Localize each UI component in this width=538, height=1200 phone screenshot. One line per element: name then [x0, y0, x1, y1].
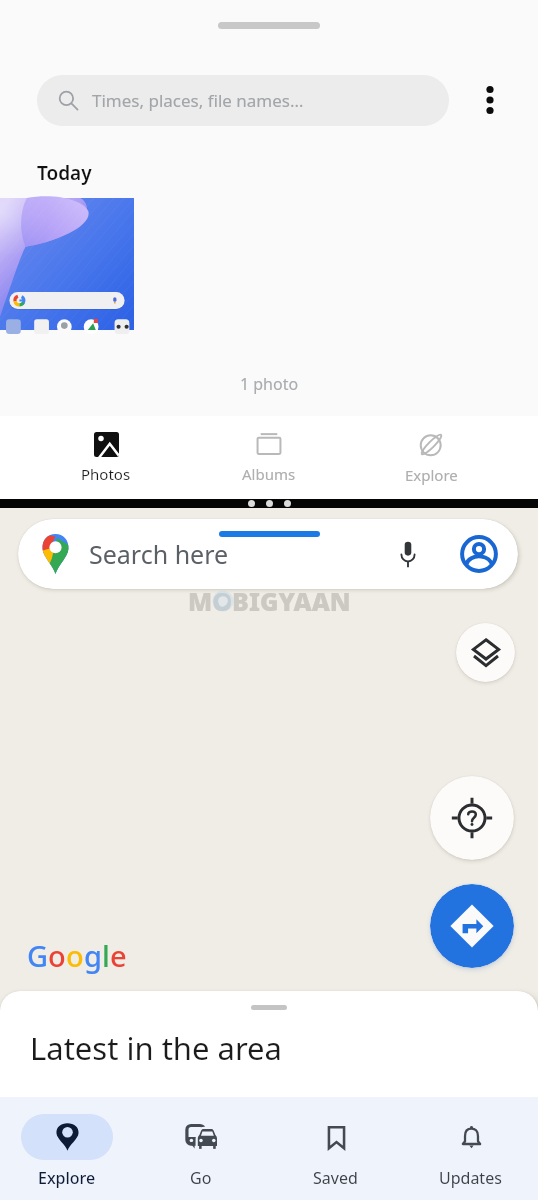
staticText: MOBIGYAAN	[188, 584, 351, 618]
button[interactable]: My location	[430, 776, 514, 860]
button[interactable]: Explore	[350, 416, 513, 499]
staticText: 1 photo	[0, 373, 538, 395]
staticText: e	[110, 936, 127, 975]
staticText: Today	[37, 160, 92, 186]
staticText: Times, places, file names…	[92, 89, 304, 112]
staticText: G	[27, 936, 48, 975]
button[interactable]	[0, 198, 134, 330]
staticText: Albums	[242, 464, 296, 484]
staticText: Search here	[89, 537, 386, 571]
staticText: o	[66, 936, 84, 975]
button[interactable]: Map layers	[456, 623, 515, 682]
staticText: Latest in the area	[30, 1027, 282, 1069]
button[interactable]: Account	[457, 532, 501, 576]
staticText: o	[48, 936, 66, 975]
button[interactable]: Search here	[18, 519, 518, 589]
staticText: Go	[190, 1167, 212, 1189]
staticText: Updates	[439, 1167, 502, 1189]
button[interactable]: Go	[134, 1097, 268, 1200]
button[interactable]: Times, places, file names…	[37, 75, 449, 126]
button[interactable]: Directions	[430, 884, 514, 968]
staticText: Saved	[313, 1167, 358, 1189]
staticText: Explore	[405, 465, 458, 485]
button[interactable]: Voice search	[386, 532, 430, 576]
button[interactable]: Explore	[0, 1097, 134, 1200]
staticText: Photos	[81, 464, 131, 484]
button[interactable]: More options	[470, 80, 510, 120]
staticText: Explore	[38, 1167, 96, 1189]
button[interactable]: Updates	[403, 1097, 538, 1200]
staticText: g	[84, 936, 102, 975]
staticText: l	[102, 936, 110, 975]
button[interactable]: Albums	[187, 416, 350, 499]
button[interactable]: Photos	[25, 416, 187, 499]
button[interactable]: Saved	[268, 1097, 403, 1200]
